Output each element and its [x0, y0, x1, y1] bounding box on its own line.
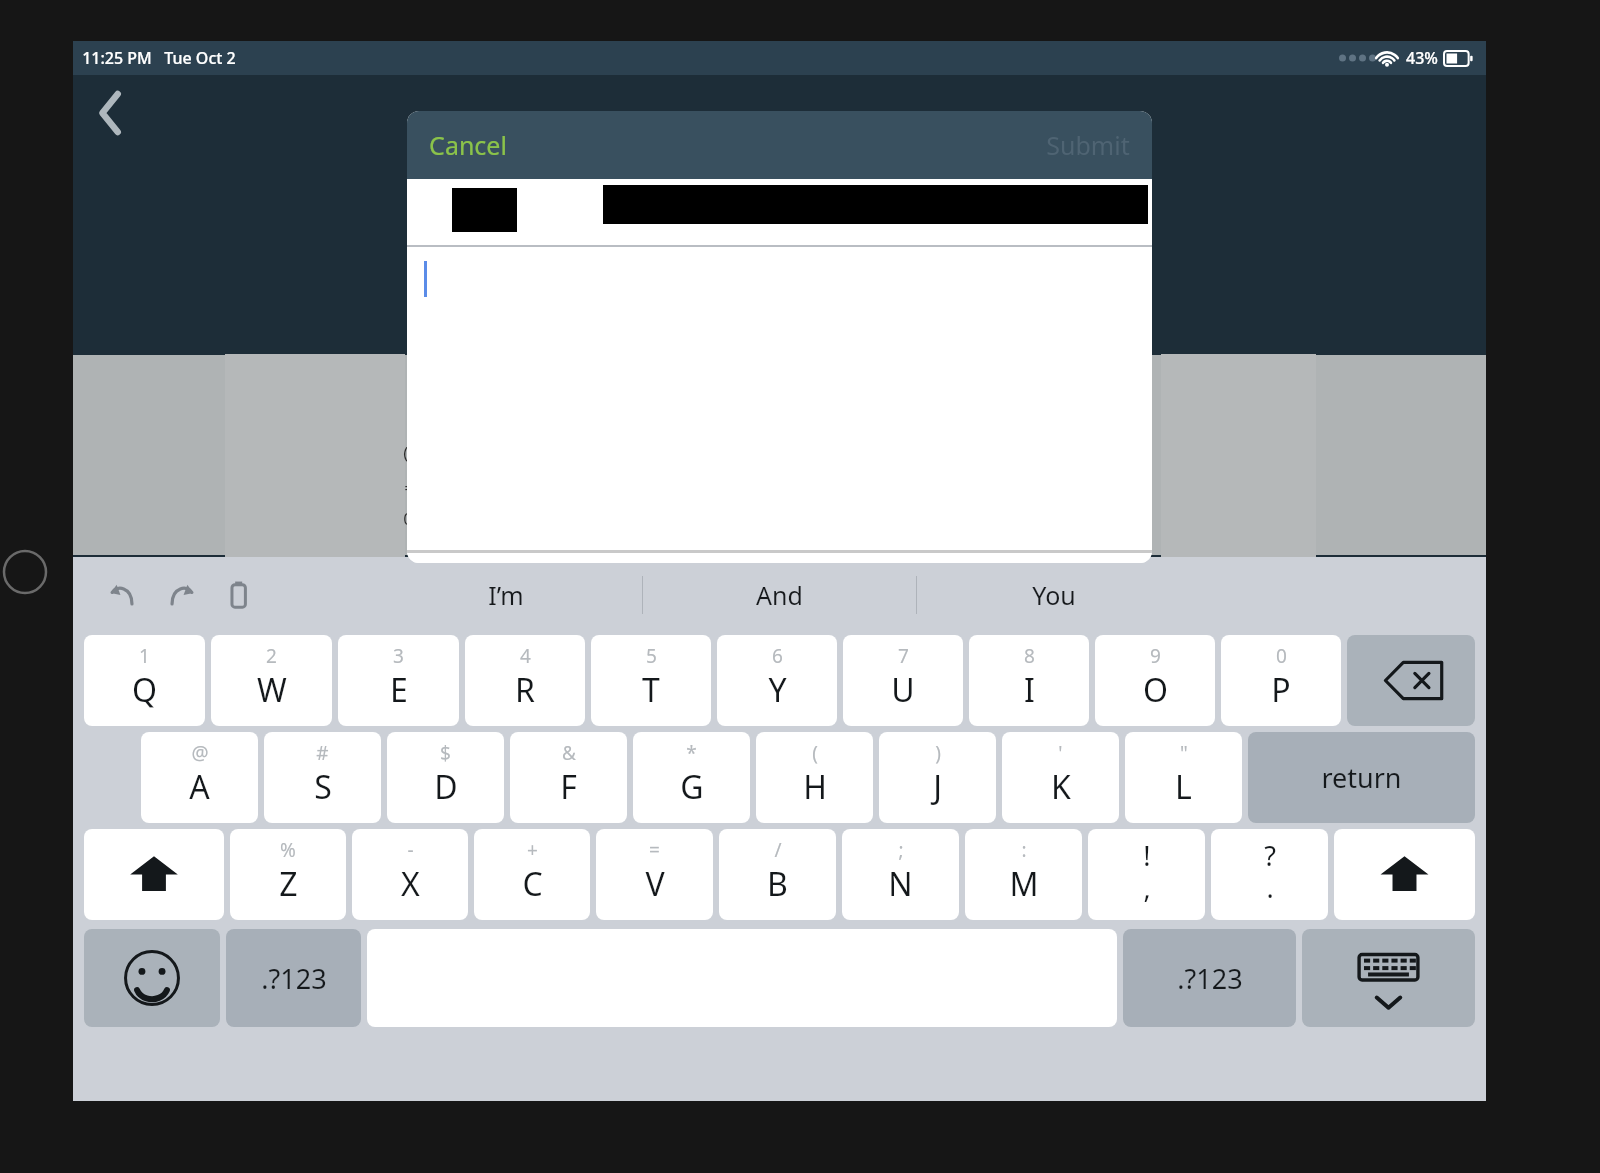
button[interactable]: )	[879, 732, 996, 823]
staticText: /	[774, 837, 782, 863]
staticText: "	[1180, 740, 1188, 766]
staticText: G	[680, 765, 704, 809]
staticText: +	[527, 837, 538, 863]
staticText: V	[645, 862, 665, 906]
staticText: N	[888, 862, 913, 906]
button[interactable]: #	[264, 732, 381, 823]
button[interactable]: +	[474, 829, 590, 920]
button[interactable]: .?123	[226, 929, 361, 1027]
button[interactable]: And	[643, 557, 916, 632]
staticText: .	[1266, 869, 1274, 906]
button[interactable]: ;	[842, 829, 959, 920]
button[interactable]: return	[1248, 732, 1475, 823]
button[interactable]: Back	[83, 85, 139, 141]
button[interactable]: Submit	[1034, 120, 1142, 170]
staticText: :	[1021, 837, 1027, 863]
button[interactable]: ?	[1211, 829, 1328, 920]
button[interactable]: :	[965, 829, 1082, 920]
staticText: Q	[132, 668, 157, 712]
staticText: Tue Oct 2	[164, 47, 236, 69]
button[interactable]: 7	[843, 635, 963, 726]
staticText: R	[515, 668, 535, 712]
staticText: D	[434, 765, 458, 809]
staticText: return	[1321, 759, 1402, 796]
staticText: *	[686, 740, 697, 766]
staticText: C	[522, 862, 543, 906]
button[interactable]: Emoji	[84, 929, 220, 1027]
button[interactable]: 3	[338, 635, 459, 726]
staticText: B	[767, 862, 788, 906]
staticText: Cancel	[429, 128, 507, 162]
staticText: ?	[1264, 837, 1276, 874]
staticText: A	[189, 765, 210, 809]
staticText: F	[560, 765, 577, 809]
button[interactable]: -	[352, 829, 468, 920]
staticText: And	[756, 578, 803, 612]
button[interactable]: Paste	[217, 573, 261, 617]
staticText: %	[280, 837, 296, 863]
button[interactable]: Cancel	[417, 120, 519, 170]
button[interactable]: 1	[84, 635, 205, 726]
button[interactable]: *	[633, 732, 750, 823]
staticText: 7	[898, 643, 909, 669]
button[interactable]: Hide keyboard	[1302, 929, 1475, 1027]
button[interactable]: Redo	[159, 573, 203, 617]
staticText: S	[314, 765, 332, 809]
button[interactable]: (	[756, 732, 873, 823]
button[interactable]: Backspace	[1347, 635, 1475, 726]
staticText: @	[191, 740, 209, 766]
button[interactable]: 5	[591, 635, 711, 726]
staticText: .?123	[1177, 960, 1243, 997]
staticText: U	[891, 668, 915, 712]
staticText: 9	[1150, 643, 1161, 669]
staticText: 0	[1276, 643, 1287, 669]
staticText: Y	[768, 668, 787, 712]
staticText: 6	[772, 643, 783, 669]
staticText: X	[401, 862, 420, 906]
staticText: )	[935, 740, 941, 766]
button[interactable]: 0	[1221, 635, 1341, 726]
other: Home	[2, 549, 48, 595]
button[interactable]: 8	[969, 635, 1089, 726]
button[interactable]: Undo	[101, 573, 145, 617]
button[interactable]: 9	[1095, 635, 1215, 726]
staticText: 3	[393, 643, 404, 669]
staticText: 0, 20..	[403, 507, 451, 530]
staticText: J	[933, 765, 942, 809]
staticText: M	[1009, 862, 1039, 906]
button[interactable]: Shift	[1334, 829, 1475, 920]
staticText: E	[390, 668, 408, 712]
button[interactable]: 2	[211, 635, 332, 726]
button[interactable]: "	[1125, 732, 1242, 823]
button[interactable]: /	[719, 829, 836, 920]
button[interactable]: 4	[465, 635, 585, 726]
staticText: -	[407, 837, 414, 863]
button[interactable]: %	[230, 829, 346, 920]
staticText: ;	[898, 837, 904, 863]
staticText: L	[1175, 765, 1192, 809]
staticText: $	[440, 740, 451, 766]
button[interactable]: You	[917, 557, 1190, 632]
staticText: =	[649, 837, 660, 863]
staticText: #	[316, 740, 329, 766]
button[interactable]: $	[387, 732, 504, 823]
button[interactable]: =	[596, 829, 713, 920]
button[interactable]: I’m	[369, 557, 642, 632]
staticText: !	[1143, 837, 1151, 874]
staticText: &	[562, 740, 576, 766]
button[interactable]: !	[1088, 829, 1205, 920]
staticText: You	[1032, 578, 1076, 612]
staticText: ,	[1143, 869, 1151, 906]
button[interactable]: @	[141, 732, 258, 823]
button[interactable]: '	[1002, 732, 1119, 823]
button[interactable]: .?123	[1123, 929, 1296, 1027]
button[interactable]: &	[510, 732, 627, 823]
staticText: 4	[520, 643, 531, 669]
button[interactable]: Shift	[84, 829, 224, 920]
staticText: W	[257, 668, 287, 712]
button[interactable]: 6	[717, 635, 837, 726]
staticText: I	[1024, 668, 1035, 712]
staticText: ( ra	[403, 441, 690, 464]
staticText: 8	[1024, 643, 1035, 669]
